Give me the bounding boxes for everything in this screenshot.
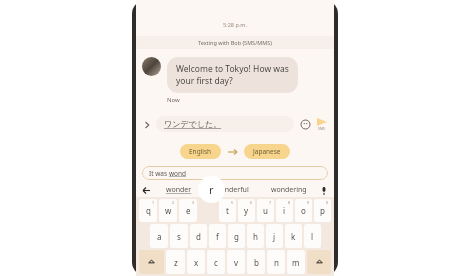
staticText: 9 xyxy=(307,200,310,205)
staticText: x xyxy=(194,257,199,268)
button[interactable]: wondering xyxy=(260,183,318,197)
button[interactable]: Send SMS xyxy=(315,118,329,131)
button[interactable]: wonderful xyxy=(204,183,260,197)
button[interactable]: v xyxy=(227,250,245,274)
button[interactable]: a xyxy=(150,224,168,248)
staticText: l xyxy=(311,231,314,242)
button[interactable]: o xyxy=(295,199,312,222)
staticText: 0 xyxy=(326,200,329,205)
staticText: v xyxy=(234,257,239,268)
staticText: wonderful xyxy=(215,185,249,195)
staticText: b xyxy=(254,257,259,268)
staticText: o xyxy=(301,205,306,216)
button[interactable]: Backspace xyxy=(307,250,331,274)
staticText: 1 xyxy=(152,200,155,205)
staticText: 2 xyxy=(172,200,175,205)
button[interactable]: y xyxy=(238,199,255,222)
staticText: 5 xyxy=(231,200,234,205)
button[interactable]: wonder xyxy=(154,183,204,197)
staticText: p xyxy=(320,205,325,216)
staticText: d xyxy=(196,231,201,242)
staticText: m xyxy=(292,257,300,268)
button[interactable]: d xyxy=(190,224,207,248)
staticText: Welcome to Tokyo! How was your first day… xyxy=(176,63,289,87)
staticText: 8 xyxy=(288,200,291,205)
staticText: u xyxy=(263,205,268,216)
button[interactable]: It was xyxy=(142,166,328,180)
staticText: s xyxy=(177,231,181,242)
button[interactable]: m xyxy=(287,250,305,274)
button[interactable]: z xyxy=(166,250,185,274)
button[interactable]: e xyxy=(179,199,197,222)
staticText: English xyxy=(189,147,212,156)
staticText: e xyxy=(186,205,191,216)
button[interactable]: i xyxy=(276,199,293,222)
button[interactable]: Voice input xyxy=(318,185,329,196)
staticText: 7 xyxy=(269,200,272,205)
staticText: h xyxy=(253,231,258,242)
button[interactable]: s xyxy=(170,224,188,248)
staticText: w xyxy=(165,205,172,216)
button[interactable]: n xyxy=(267,250,285,274)
staticText: g xyxy=(234,231,239,242)
button[interactable]: l xyxy=(304,224,321,248)
staticText: 3 xyxy=(192,200,195,205)
staticText: wondering xyxy=(271,185,307,195)
button[interactable]: w xyxy=(159,199,177,222)
button[interactable]: Welcome to Tokyo! How was your first day… xyxy=(167,57,298,93)
button[interactable]: English xyxy=(180,144,221,159)
button[interactable]: Japanese xyxy=(244,144,290,159)
staticText: z xyxy=(174,257,178,268)
button[interactable]: j xyxy=(266,224,283,248)
button[interactable]: ワンデでした。 xyxy=(156,116,294,132)
staticText: t xyxy=(226,205,229,216)
button[interactable]: Expand xyxy=(141,119,152,130)
staticText: Japanese xyxy=(253,147,281,156)
button[interactable]: k xyxy=(285,224,302,248)
button[interactable]: x xyxy=(187,250,205,274)
button[interactable]: Back xyxy=(141,185,151,195)
button[interactable]: u xyxy=(257,199,274,222)
button[interactable]: c xyxy=(207,250,225,274)
button[interactable]: r xyxy=(198,176,225,203)
staticText: Texting with Bob (SMS/MMS) xyxy=(198,39,272,46)
staticText: Now xyxy=(167,96,180,104)
button[interactable]: b xyxy=(247,250,265,274)
button[interactable]: Emoji xyxy=(299,118,311,130)
staticText: f xyxy=(216,231,219,242)
button[interactable]: q xyxy=(139,199,157,222)
staticText: k xyxy=(291,231,296,242)
staticText: It was xyxy=(149,169,169,178)
staticText: q xyxy=(146,205,151,216)
staticText: a xyxy=(157,231,162,242)
button[interactable]: g xyxy=(228,224,245,248)
button[interactable]: t xyxy=(219,199,236,222)
staticText: r xyxy=(209,182,214,197)
staticText: j xyxy=(273,231,276,242)
button[interactable]: p xyxy=(314,199,331,222)
staticText: i xyxy=(283,205,286,216)
staticText: n xyxy=(274,257,279,268)
button[interactable]: f xyxy=(209,224,226,248)
staticText: ワンデでした。 xyxy=(164,119,222,129)
button[interactable]: Shift xyxy=(139,250,164,274)
button[interactable]: h xyxy=(247,224,264,248)
staticText: wond xyxy=(169,169,187,178)
staticText: 5:28 p.m. xyxy=(136,21,334,28)
staticText: SMS xyxy=(318,126,326,131)
staticText: c xyxy=(214,257,218,268)
staticText: wonder xyxy=(166,185,192,195)
staticText: y xyxy=(244,205,249,216)
staticText: 6 xyxy=(250,200,253,205)
